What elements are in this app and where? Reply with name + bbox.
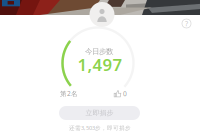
staticText: ? [185,18,188,28]
staticText: 1,497 [77,53,122,76]
button[interactable]: Likes [114,89,127,98]
staticText: 0 [123,89,127,98]
button[interactable]: 立即捐步 [59,106,140,120]
staticText: 第2名 [60,89,78,98]
staticText: 还需3,503步，即可捐步 [69,124,131,132]
staticText: 立即捐步 [85,109,113,117]
staticText: 今日步数 [85,47,113,56]
button[interactable]: Help [182,19,191,28]
